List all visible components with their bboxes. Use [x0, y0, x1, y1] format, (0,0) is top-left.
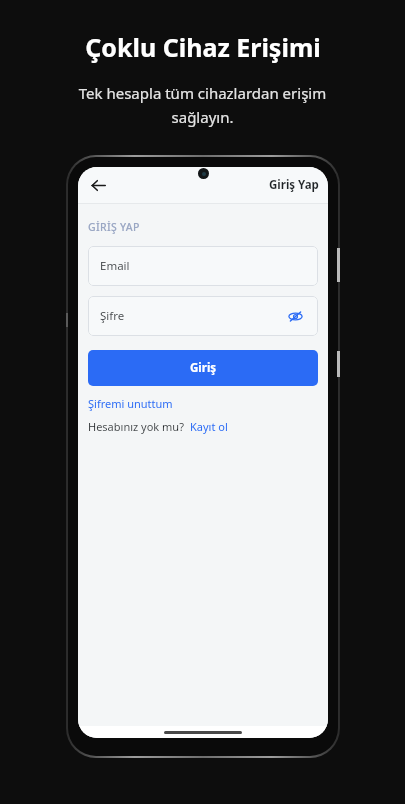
staticText: Kayıt ol	[190, 419, 228, 434]
button[interactable]: Email	[88, 246, 318, 286]
button[interactable]: Şifremi unuttum	[88, 396, 173, 411]
button[interactable]: Back	[84, 171, 112, 199]
staticText: Giriş Yap	[269, 177, 319, 193]
button[interactable]: Giriş	[88, 350, 318, 386]
button[interactable]: Kayıt ol	[190, 419, 228, 434]
staticText: Şifremi unuttum	[88, 396, 173, 411]
button[interactable]: Show password	[284, 305, 306, 327]
staticText: Hesabınız yok mu?	[88, 419, 184, 434]
staticText: Giriş	[190, 360, 217, 376]
staticText: GİRİŞ YAP	[88, 220, 140, 234]
staticText: Tek hesapla tüm cihazlardan erişim sağla…	[50, 83, 355, 127]
staticText: Email	[100, 258, 130, 274]
staticText: Şifre	[100, 308, 125, 324]
button[interactable]: Şifre	[88, 296, 318, 336]
staticText: Çoklu Cihaz Erişimi	[85, 30, 321, 64]
